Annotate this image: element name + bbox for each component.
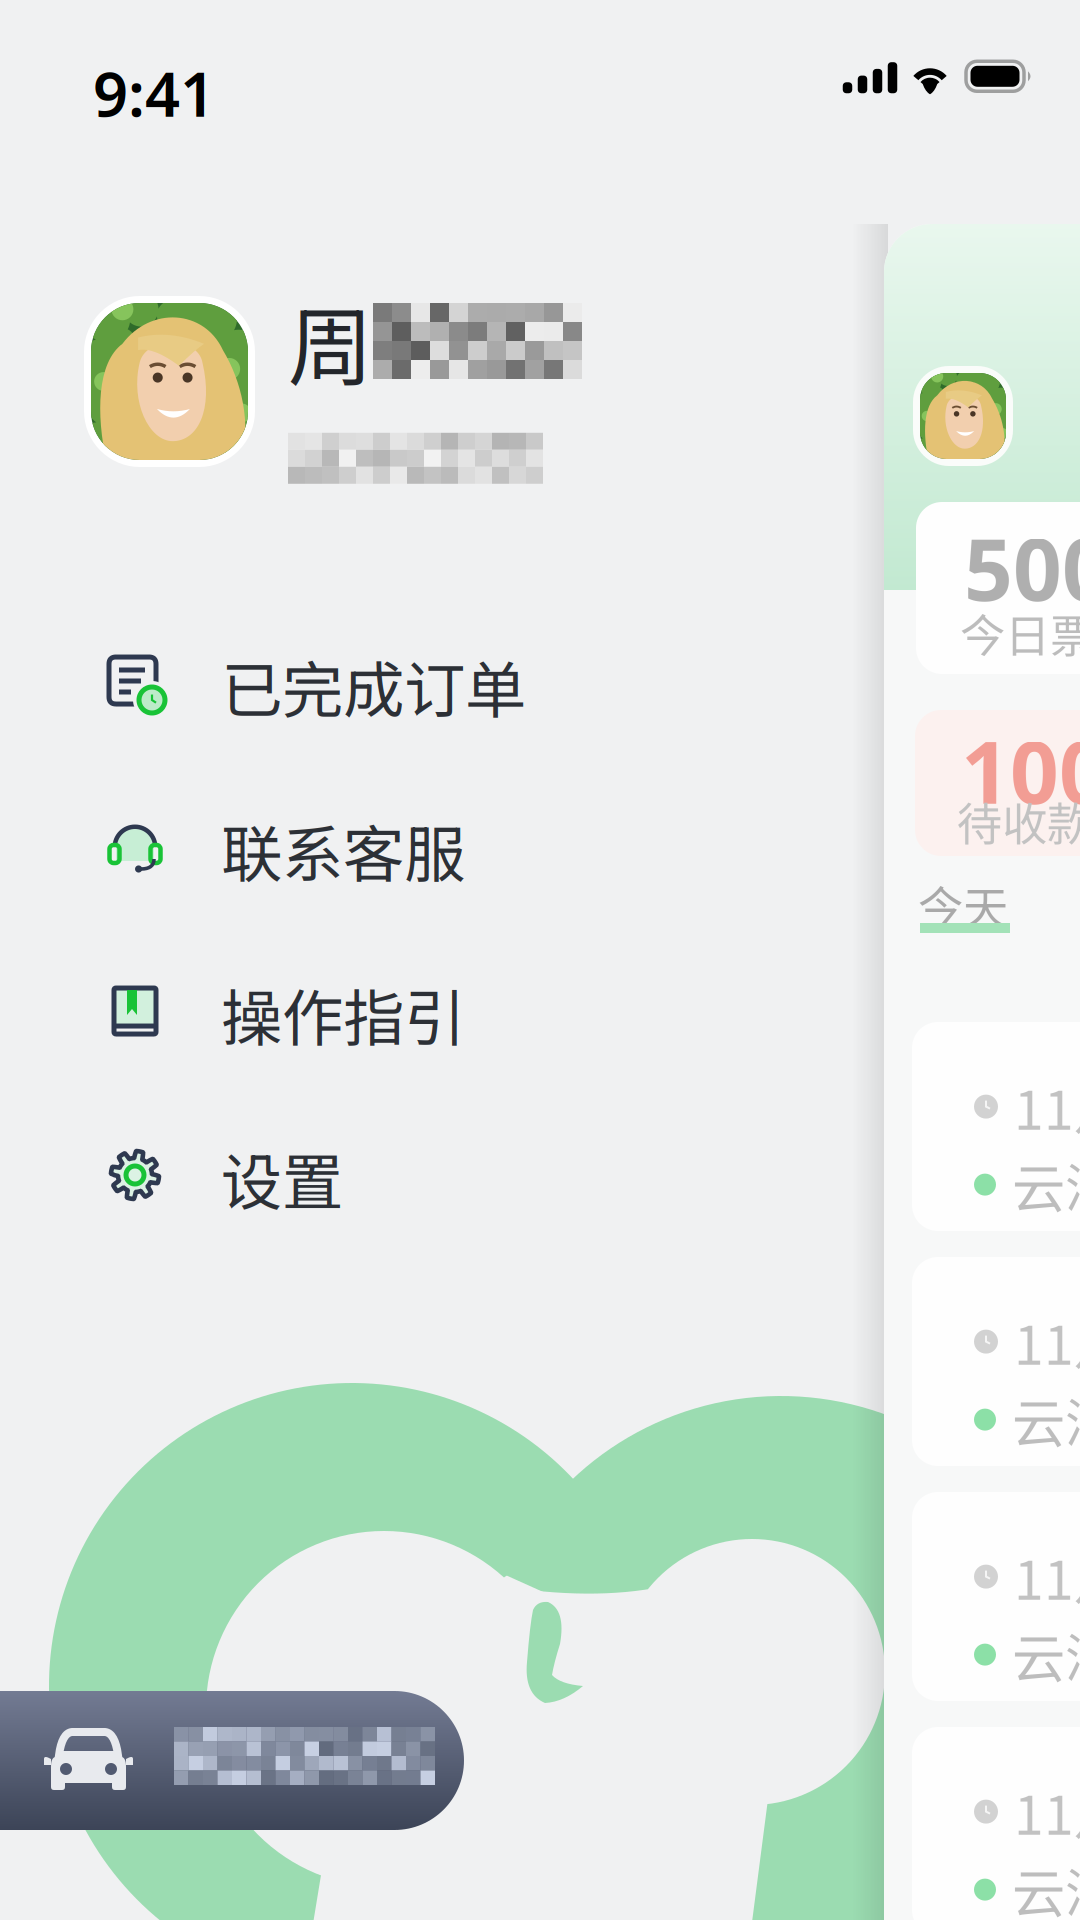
staticText: 云滴总 <box>1012 1616 1080 1693</box>
staticText: 500. <box>964 511 1080 624</box>
button[interactable]: 操作指引 <box>0 932 1080 1096</box>
staticText: 已完成订单 <box>221 642 526 730</box>
button[interactable]: 联系客服 <box>0 768 1080 932</box>
staticText: 操作指引 <box>221 970 465 1058</box>
staticText: 11月1 <box>1014 1303 1080 1380</box>
button[interactable]: 周 <box>84 296 784 467</box>
staticText: 100.5 <box>961 714 1080 827</box>
button[interactable]: 已完成订单 <box>0 604 1080 768</box>
staticText: 云滴总 <box>1012 1851 1080 1920</box>
staticText: 云滴总 <box>1012 1146 1080 1223</box>
staticText: 11月1 <box>1014 1773 1080 1850</box>
button[interactable]: Current vehicle <box>0 1691 464 1830</box>
staticText: 9:41 <box>93 52 215 134</box>
staticText: 云滴总 <box>1012 1381 1080 1458</box>
button[interactable]: 设置 <box>0 1096 1080 1260</box>
staticText: 周 <box>288 279 373 403</box>
staticText: 11月1 <box>1014 1068 1080 1145</box>
staticText: 今日票款 <box>960 600 1080 666</box>
staticText: 设置 <box>221 1134 343 1222</box>
staticText: 11月1 <box>1014 1538 1080 1615</box>
staticText: 今天 <box>918 872 1008 938</box>
staticText: 联系客服 <box>221 806 465 894</box>
staticText: 待收款( <box>957 788 1080 854</box>
